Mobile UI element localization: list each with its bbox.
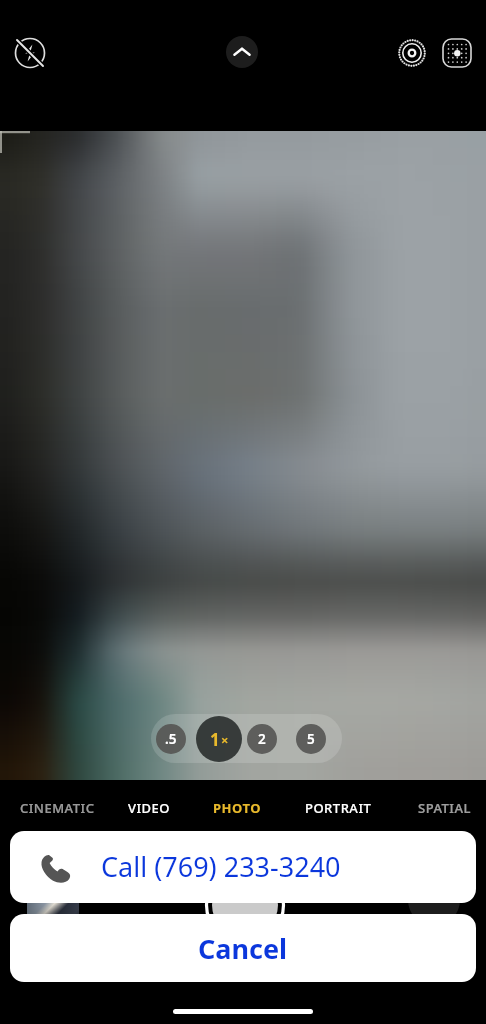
- staticText: ×: [221, 731, 229, 749]
- button[interactable]: PORTRAIT: [299, 794, 378, 822]
- staticText: SPATIAL: [418, 799, 471, 817]
- button[interactable]: .5: [156, 724, 186, 754]
- staticText: CINEMATIC: [20, 799, 95, 817]
- button[interactable]: PHOTO: [207, 794, 267, 822]
- button[interactable]: Photo library: [27, 874, 79, 926]
- button[interactable]: CINEMATIC: [14, 794, 101, 822]
- button[interactable]: 5: [296, 724, 326, 754]
- button[interactable]: Take photo: [205, 865, 285, 945]
- button[interactable]: SPATIAL: [412, 794, 477, 822]
- button[interactable]: 1: [196, 716, 242, 762]
- button[interactable]: Photographic styles: [435, 31, 479, 75]
- button[interactable]: Live Photo: [390, 31, 434, 75]
- button[interactable]: More camera controls: [226, 36, 258, 68]
- staticText: Call (769) 233-3240: [101, 848, 341, 885]
- staticText: PHOTO: [213, 799, 261, 817]
- button[interactable]: Flip camera: [408, 874, 460, 926]
- staticText: Cancel: [198, 930, 288, 967]
- staticText: VIDEO: [128, 799, 171, 817]
- staticText: PORTRAIT: [305, 799, 372, 817]
- button[interactable]: 2: [247, 724, 277, 754]
- staticText: 2: [258, 730, 266, 748]
- button[interactable]: Call (769) 233-3240: [10, 831, 476, 903]
- staticText: .5: [165, 730, 177, 748]
- button[interactable]: VIDEO: [122, 794, 177, 822]
- button[interactable]: Cancel: [10, 914, 476, 982]
- button[interactable]: Flash off: [8, 31, 52, 75]
- staticText: 5: [307, 730, 315, 748]
- staticText: 1: [210, 728, 220, 751]
